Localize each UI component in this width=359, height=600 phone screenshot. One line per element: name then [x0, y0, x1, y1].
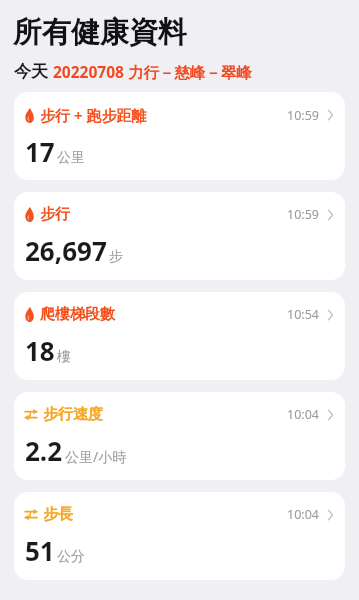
- button[interactable]: 步行速度: [14, 392, 345, 480]
- staticText: 公里/小時: [65, 447, 127, 466]
- button[interactable]: 步長: [14, 492, 345, 580]
- staticText: 10:04: [287, 506, 319, 523]
- staticText: 10:59: [287, 206, 319, 223]
- staticText: 步長: [43, 505, 73, 524]
- staticText: 10:04: [287, 406, 319, 423]
- staticText: 樓: [57, 348, 71, 366]
- staticText: 今天: [14, 61, 48, 82]
- staticText: 步行 + 跑步距離: [40, 105, 147, 125]
- staticText: 18: [25, 333, 55, 368]
- staticText: 步: [109, 248, 123, 266]
- staticText: 10:59: [287, 107, 319, 124]
- staticText: 步行: [40, 205, 70, 224]
- staticText: 26,697: [25, 233, 107, 268]
- staticText: 20220708 力行－慈峰－翠峰: [53, 61, 252, 82]
- button[interactable]: 步行 + 跑步距離: [14, 92, 345, 180]
- staticText: 公里: [57, 149, 85, 167]
- staticText: 17: [25, 134, 55, 169]
- staticText: 2.2: [25, 433, 63, 468]
- button[interactable]: 爬樓梯段數: [14, 292, 345, 380]
- staticText: 爬樓梯段數: [40, 305, 115, 324]
- staticText: 10:54: [287, 306, 319, 323]
- staticText: 公分: [57, 548, 85, 566]
- button[interactable]: 步行: [14, 192, 345, 280]
- staticText: 51: [25, 533, 55, 568]
- staticText: 所有健康資料: [13, 14, 187, 51]
- staticText: 步行速度: [43, 405, 103, 424]
